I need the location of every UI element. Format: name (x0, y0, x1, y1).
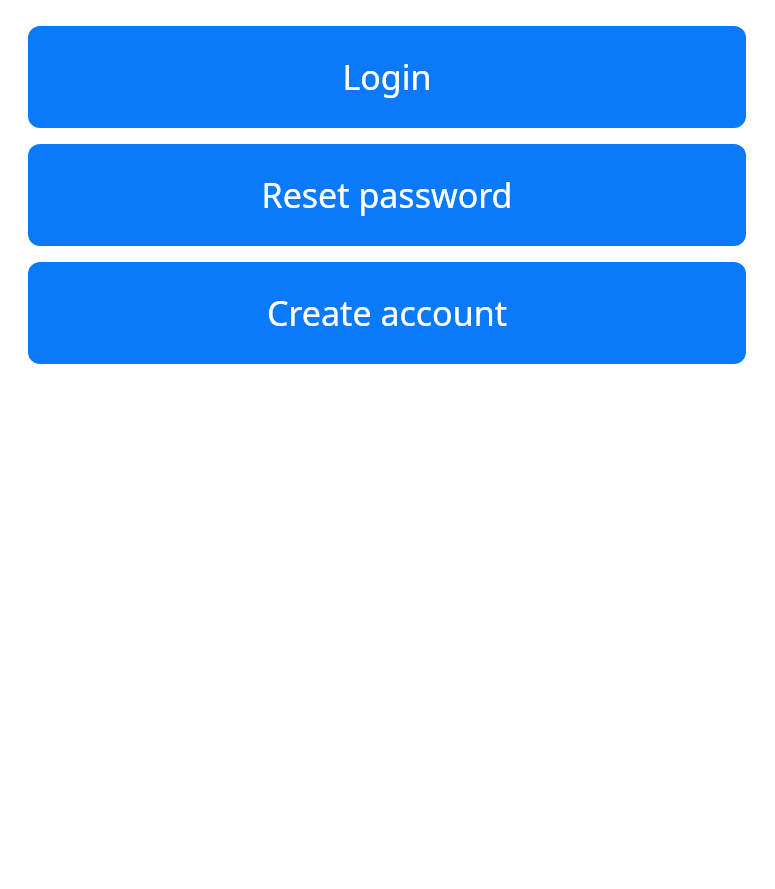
staticText: Create account (267, 290, 507, 336)
button[interactable]: Create account (28, 262, 746, 364)
button[interactable]: Reset password (28, 144, 746, 246)
staticText: Reset password (261, 172, 513, 218)
staticText: Login (342, 54, 432, 100)
button[interactable]: Login (28, 26, 746, 128)
